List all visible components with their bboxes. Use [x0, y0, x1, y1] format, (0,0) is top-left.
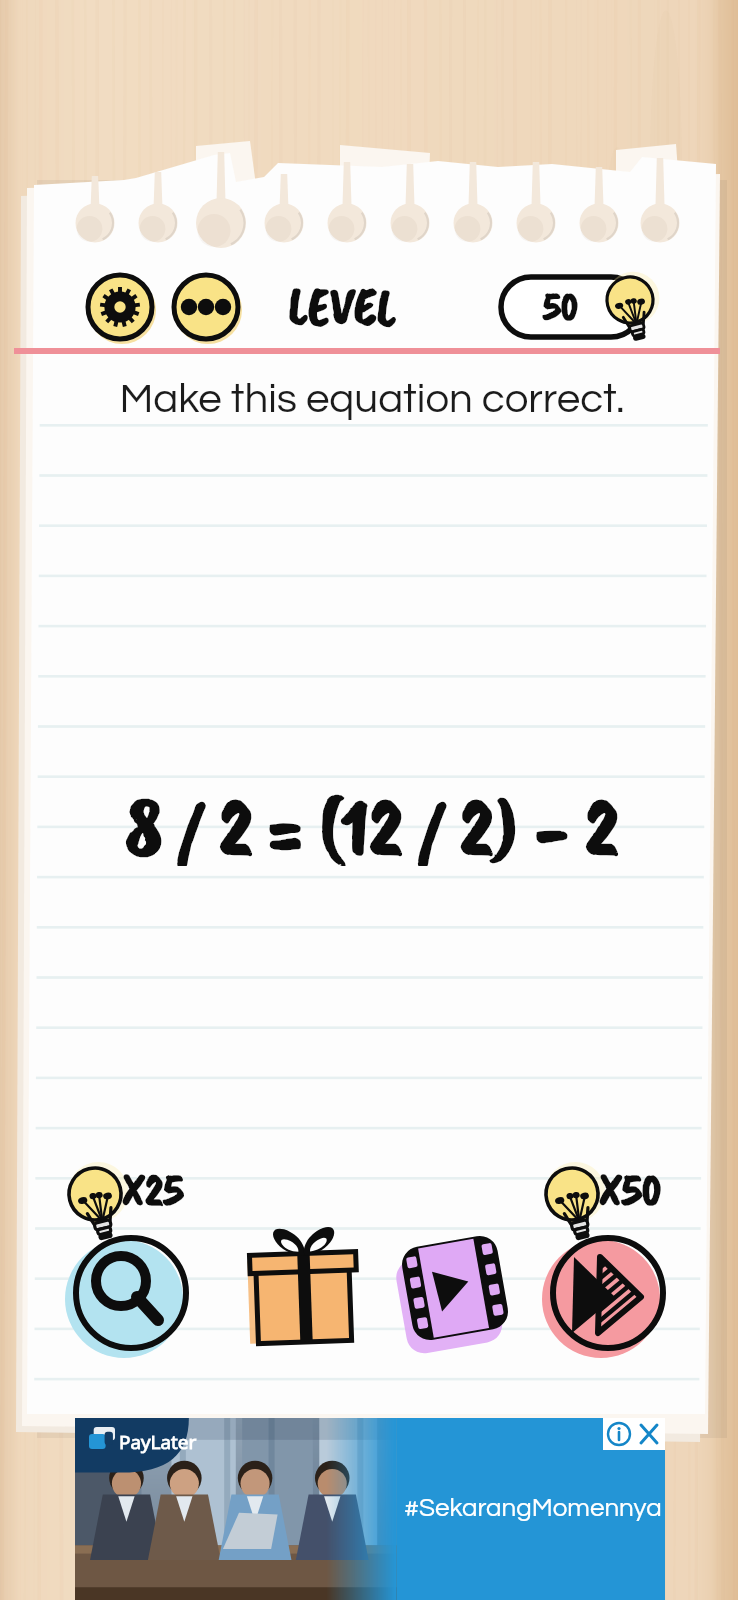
other: Close ad	[603, 1418, 665, 1450]
staticText: X25	[122, 1162, 184, 1218]
staticText: #SekarangMomennya	[404, 1495, 662, 1522]
button[interactable]: Use hint	[66, 1228, 196, 1358]
button[interactable]: Level	[252, 272, 432, 338]
button[interactable]: Advertisement: PayLater	[75, 1418, 665, 1600]
button[interactable]: More options	[172, 273, 240, 341]
button[interactable]: Watch video for hints	[395, 1228, 515, 1348]
button[interactable]: Daily gift	[245, 1230, 365, 1350]
button[interactable]: Hints: 50	[501, 272, 653, 342]
button[interactable]: Skip level	[543, 1228, 673, 1358]
staticText: 8 / 2 = (12 / 2) - 2	[125, 776, 619, 866]
staticText: X50	[599, 1162, 662, 1218]
staticText: 50	[543, 282, 579, 332]
button[interactable]: Settings	[86, 273, 154, 341]
staticText: Make this equation correct.	[119, 378, 625, 421]
staticText: LEVEL	[288, 272, 396, 338]
staticText: PayLater	[119, 1429, 197, 1455]
